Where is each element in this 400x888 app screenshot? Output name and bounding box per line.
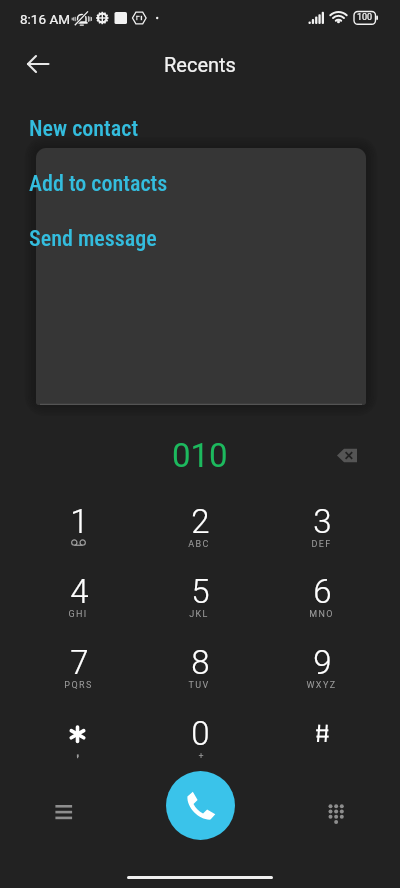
staticText: 3 (313, 502, 332, 541)
button[interactable]: Call history (44, 792, 84, 832)
staticText: 7 (70, 643, 89, 682)
staticText: GHI (68, 609, 88, 620)
staticText: 6 (313, 572, 332, 611)
button[interactable]: 4 (30, 572, 128, 634)
staticText: 010 (172, 436, 228, 475)
button[interactable]: Call (166, 771, 235, 840)
button[interactable]: New contact (0, 108, 400, 150)
staticText: 100 (357, 12, 373, 23)
staticText: 9 (313, 643, 332, 682)
staticText: 8:16 AM (20, 11, 70, 27)
button[interactable]: 8 (151, 643, 249, 705)
button[interactable]: 0 (151, 714, 249, 776)
button[interactable]: Back (14, 47, 48, 81)
staticText: + (198, 751, 204, 762)
staticText: TUV (188, 680, 210, 691)
button[interactable]: 7 (30, 643, 128, 705)
button[interactable]: Add to contacts (0, 163, 400, 205)
staticText: Add to contacts (29, 171, 168, 197)
staticText: 5 (191, 572, 210, 611)
staticText: JKL (189, 609, 209, 620)
button[interactable]: Backspace (329, 437, 366, 474)
staticText: ABC (188, 539, 210, 550)
staticText: 4 (70, 572, 89, 611)
staticText: 0 (191, 714, 210, 753)
button[interactable]: 1 (30, 502, 128, 564)
button[interactable]: 6 (273, 572, 371, 634)
staticText: Recents (164, 53, 236, 76)
button[interactable]: 9 (273, 643, 371, 705)
button[interactable]: star (30, 714, 128, 776)
button[interactable]: 5 (151, 572, 249, 634)
button[interactable]: Send message (0, 218, 400, 260)
staticText: 1 (70, 502, 89, 541)
button[interactable]: pound (273, 714, 371, 776)
staticText: MNO (309, 609, 334, 620)
staticText: 2 (191, 502, 210, 541)
staticText: PQRS (64, 680, 93, 691)
staticText: WXYZ (306, 680, 337, 691)
staticText: Send message (29, 226, 157, 252)
staticText: 8 (191, 643, 210, 682)
button[interactable]: 2 (151, 502, 249, 564)
button[interactable]: 3 (273, 502, 371, 564)
staticText: DEF (311, 539, 332, 550)
staticText: New contact (29, 116, 139, 142)
button[interactable]: Dialpad (316, 786, 356, 826)
